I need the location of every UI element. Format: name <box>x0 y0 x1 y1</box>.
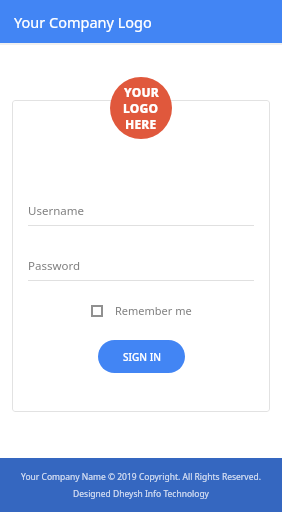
staticText: Your Company Logo <box>14 12 152 32</box>
button[interactable]: Remember me <box>87 299 196 322</box>
staticText: Password <box>28 258 81 274</box>
other: Your Logo Here <box>110 77 172 139</box>
staticText: YOUR <box>124 84 159 100</box>
staticText: Your Company Name © 2019 Copyright. All … <box>21 471 261 483</box>
staticText: HERE <box>125 116 157 132</box>
staticText: Remember me <box>115 303 192 318</box>
staticText: SIGN IN <box>123 350 161 364</box>
staticText: LOGO <box>123 100 159 116</box>
staticText: Username <box>28 203 84 219</box>
button[interactable]: SIGN IN <box>98 340 185 373</box>
staticText: Designed Dheysh Info Technology <box>73 488 209 500</box>
